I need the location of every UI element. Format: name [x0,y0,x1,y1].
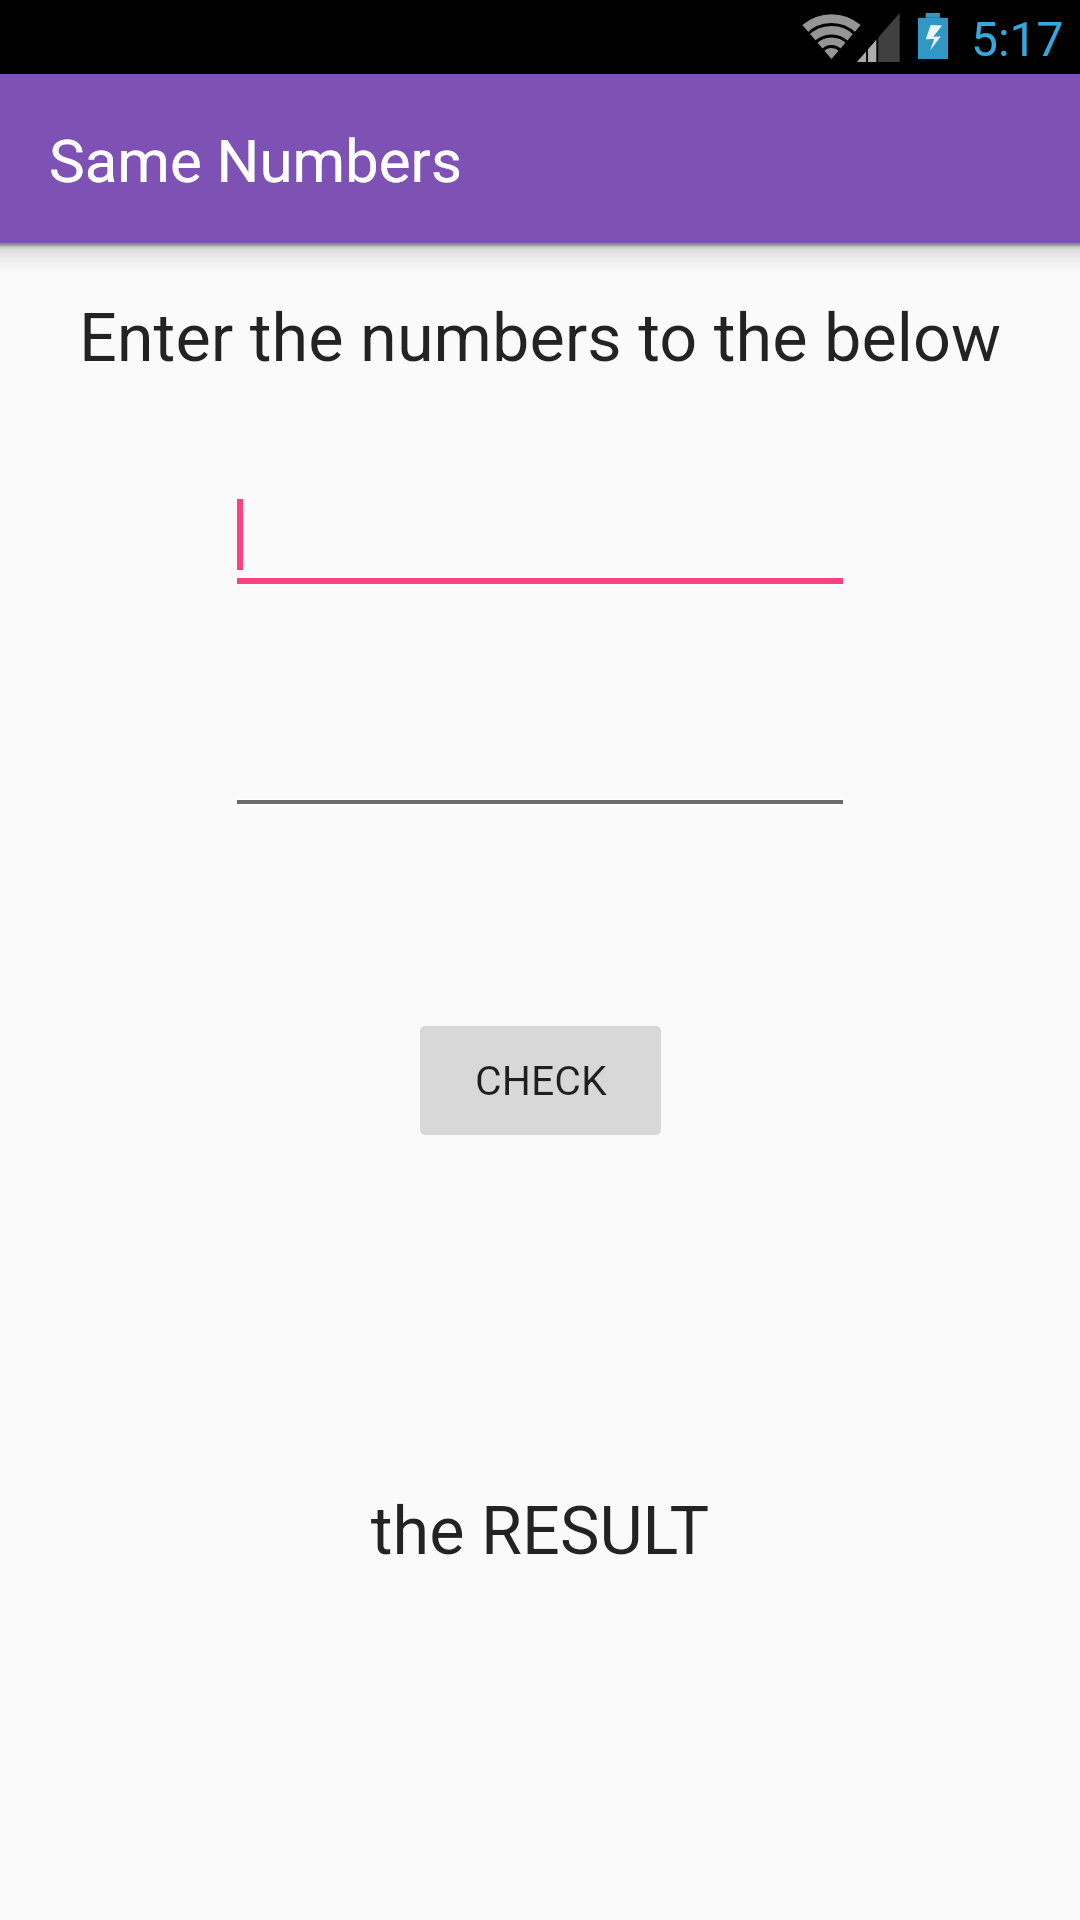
button[interactable]: Second number input [237,694,843,808]
button[interactable]: First number input [237,470,843,586]
staticText: CHECK [475,1057,607,1105]
staticText: 5:17 [971,11,1064,67]
staticText: the RESULT [0,1492,1080,1570]
staticText: Enter the numbers to the below [0,299,1080,377]
button[interactable]: CHECK [420,1026,661,1135]
staticText: Same Numbers [49,126,462,196]
